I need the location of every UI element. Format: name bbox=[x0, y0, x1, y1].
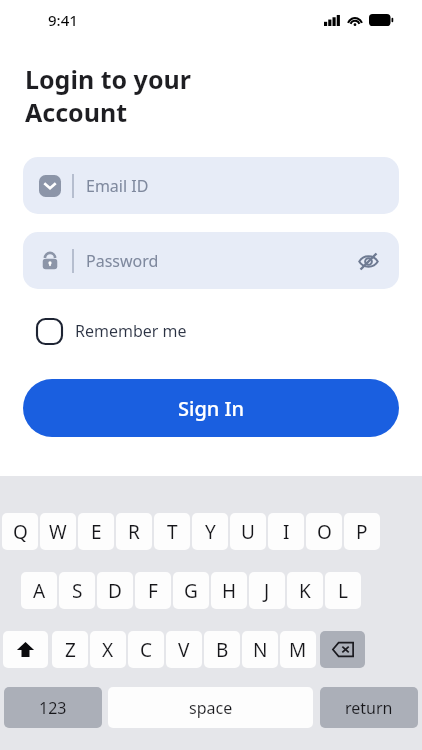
staticText: J bbox=[264, 578, 270, 604]
staticText: F bbox=[148, 578, 158, 604]
button[interactable]: Show password bbox=[353, 246, 383, 276]
staticText: space bbox=[189, 697, 233, 719]
button[interactable]: F bbox=[135, 572, 171, 609]
staticText: Sign In bbox=[178, 395, 245, 422]
staticText: D bbox=[108, 578, 122, 604]
button[interactable]: Password bbox=[23, 232, 399, 289]
button[interactable]: T bbox=[154, 513, 190, 550]
button[interactable]: Y bbox=[192, 513, 228, 550]
staticText: L bbox=[338, 578, 348, 604]
staticText: B bbox=[216, 637, 229, 663]
button[interactable]: J bbox=[249, 572, 285, 609]
staticText: N bbox=[253, 637, 268, 663]
button[interactable]: return bbox=[320, 687, 418, 728]
staticText: W bbox=[49, 519, 67, 545]
staticText: R bbox=[128, 519, 140, 545]
staticText: C bbox=[140, 637, 153, 663]
staticText: G bbox=[184, 578, 198, 604]
staticText: Password bbox=[86, 250, 159, 272]
staticText: Remember me bbox=[75, 320, 187, 342]
button[interactable]: I bbox=[268, 513, 304, 550]
staticText: Z bbox=[65, 637, 76, 663]
staticText: Login to your Account bbox=[25, 62, 191, 129]
staticText: Email ID bbox=[86, 175, 149, 197]
staticText: A bbox=[33, 578, 46, 604]
staticText: T bbox=[167, 519, 178, 545]
staticText: Q bbox=[13, 519, 28, 545]
button[interactable]: Backspace bbox=[320, 631, 365, 668]
button[interactable]: space bbox=[108, 687, 313, 728]
staticText: P bbox=[356, 519, 368, 545]
button[interactable]: G bbox=[173, 572, 209, 609]
staticText: U bbox=[241, 519, 255, 545]
button[interactable]: X bbox=[90, 631, 126, 668]
button[interactable]: O bbox=[306, 513, 342, 550]
button[interactable]: N bbox=[242, 631, 278, 668]
button[interactable]: V bbox=[166, 631, 202, 668]
button[interactable]: Sign In bbox=[23, 379, 399, 437]
staticText: Y bbox=[205, 519, 216, 545]
button[interactable]: R bbox=[116, 513, 152, 550]
button[interactable]: Q bbox=[2, 513, 38, 550]
button[interactable]: Z bbox=[52, 631, 88, 668]
button[interactable]: A bbox=[21, 572, 57, 609]
button[interactable]: 123 bbox=[4, 687, 102, 728]
button[interactable]: B bbox=[204, 631, 240, 668]
button[interactable]: Shift bbox=[3, 631, 48, 668]
staticText: 9:41 bbox=[48, 10, 78, 30]
staticText: H bbox=[222, 578, 237, 604]
staticText: S bbox=[72, 578, 83, 604]
staticText: 123 bbox=[39, 697, 67, 719]
button[interactable]: W bbox=[40, 513, 76, 550]
staticText: V bbox=[178, 637, 190, 663]
button[interactable]: S bbox=[59, 572, 95, 609]
staticText: M bbox=[289, 637, 307, 663]
button[interactable]: M bbox=[280, 631, 316, 668]
button[interactable]: H bbox=[211, 572, 247, 609]
staticText: X bbox=[102, 637, 114, 663]
button[interactable]: K bbox=[287, 572, 323, 609]
staticText: O bbox=[317, 519, 332, 545]
button[interactable]: U bbox=[230, 513, 266, 550]
button[interactable]: P bbox=[344, 513, 380, 550]
staticText: return bbox=[345, 697, 393, 719]
staticText: K bbox=[299, 578, 311, 604]
button[interactable]: Remember me bbox=[23, 309, 201, 353]
staticText: E bbox=[91, 519, 102, 545]
button[interactable]: L bbox=[325, 572, 361, 609]
button[interactable]: E bbox=[78, 513, 114, 550]
staticText: I bbox=[283, 519, 290, 545]
button[interactable]: C bbox=[128, 631, 164, 668]
button[interactable]: Email ID bbox=[23, 157, 399, 214]
button[interactable]: D bbox=[97, 572, 133, 609]
